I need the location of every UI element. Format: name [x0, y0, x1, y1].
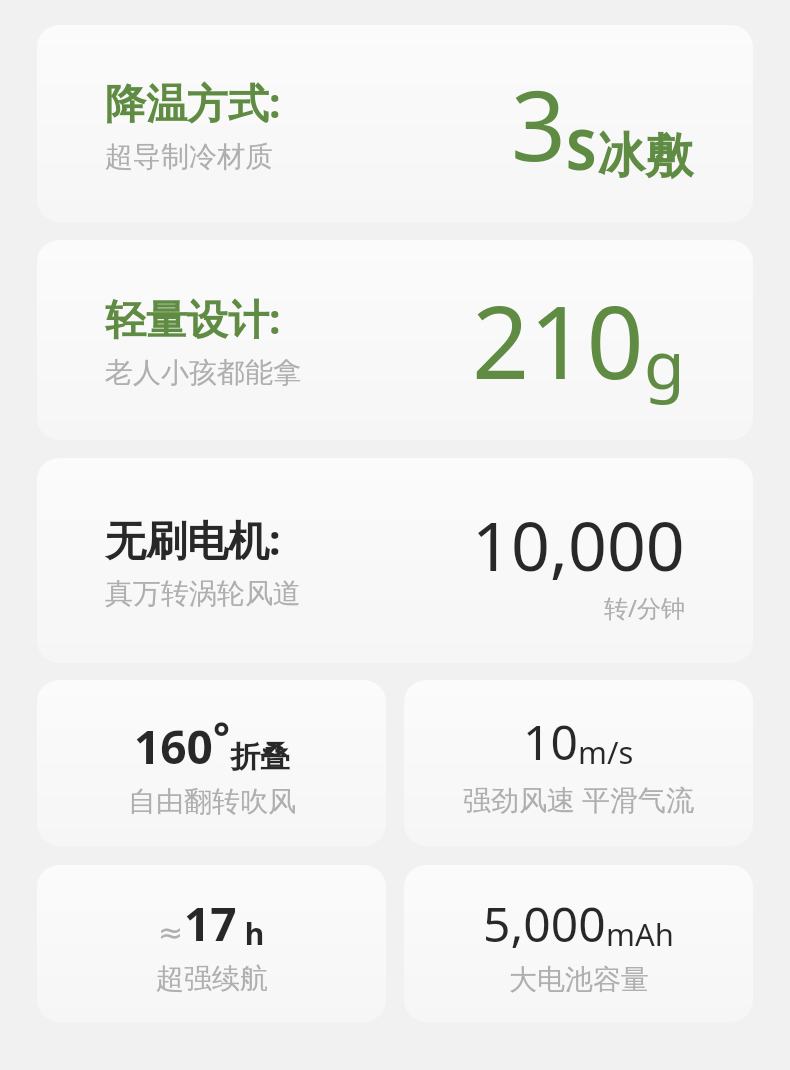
staticText: m/s: [578, 731, 634, 773]
staticText: 真万转涡轮风道: [105, 576, 301, 611]
button[interactable]: ≈: [37, 865, 386, 1022]
button[interactable]: 无刷电机:: [37, 458, 753, 663]
staticText: °: [213, 708, 230, 762]
button[interactable]: 10: [404, 680, 753, 846]
staticText: 超导制冷材质: [105, 139, 273, 174]
staticText: mAh: [606, 913, 674, 955]
staticText: 降温方式:: [105, 74, 281, 130]
button[interactable]: 160: [37, 680, 386, 846]
staticText: 轻量设计:: [105, 290, 281, 346]
staticText: 大电池容量: [509, 962, 649, 997]
staticText: 10: [523, 709, 578, 774]
staticText: 折叠: [230, 738, 290, 776]
button[interactable]: 5,000: [404, 865, 753, 1022]
staticText: 老人小孩都能拿: [105, 355, 301, 390]
staticText: 160: [134, 715, 213, 778]
button[interactable]: 轻量设计:: [37, 240, 753, 440]
staticText: 自由翻转吹风: [128, 784, 296, 819]
staticText: 210: [472, 272, 644, 408]
staticText: 转/分钟: [604, 591, 685, 624]
staticText: 3: [511, 58, 566, 189]
button[interactable]: 降温方式:: [37, 25, 753, 222]
staticText: 17: [184, 892, 237, 955]
staticText: g: [644, 318, 685, 408]
staticText: S: [566, 111, 597, 186]
staticText: h: [237, 913, 265, 954]
staticText: 强劲风速 平滑气流: [463, 780, 695, 818]
staticText: 超强续航: [156, 961, 268, 996]
staticText: 无刷电机:: [105, 511, 281, 567]
staticText: 5,000: [483, 891, 606, 956]
staticText: 冰敷: [597, 126, 693, 186]
staticText: 10,000: [472, 498, 685, 591]
staticText: ≈: [158, 915, 184, 950]
